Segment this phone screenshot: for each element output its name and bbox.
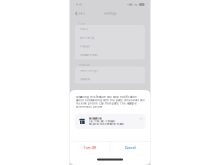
- staticText: Account: [78, 23, 85, 25]
- staticText: Turn Off: [84, 146, 96, 150]
- button[interactable]: Back: [69, 9, 86, 17]
- staticText: TallyDebtline: [88, 117, 101, 120]
- staticText: now: [139, 118, 142, 120]
- staticText: Profile: [79, 28, 87, 31]
- staticText: Tally Pairing: [79, 36, 94, 39]
- staticText: 9:41: [76, 3, 82, 6]
- button[interactable]: Invoice Settings: [75, 66, 145, 75]
- staticText: Call from ABC Company: [88, 120, 114, 123]
- staticText: ₹80,000.00 INR Overdue by 18 days.: [88, 123, 124, 125]
- button[interactable]: Purchase History: [75, 51, 145, 59]
- staticText: Cancel: [125, 146, 136, 150]
- staticText: Quotation: [79, 78, 89, 81]
- button[interactable]: Cancel: [110, 142, 150, 154]
- button[interactable]: Tally Pairing: [75, 34, 145, 42]
- staticText: Disabling this feature will stop notific…: [76, 95, 145, 108]
- button[interactable]: Turn Off: [69, 142, 110, 154]
- button[interactable]: Premium: [75, 42, 145, 51]
- staticText: Back: [78, 12, 84, 15]
- staticText: Invoice Settings: [79, 69, 97, 72]
- staticText: Settings: [104, 12, 116, 15]
- staticText: Purchase History: [79, 54, 97, 57]
- staticText: Configuration: [78, 64, 89, 66]
- button[interactable]: Quotation: [75, 75, 145, 84]
- staticText: Premium: [79, 45, 89, 48]
